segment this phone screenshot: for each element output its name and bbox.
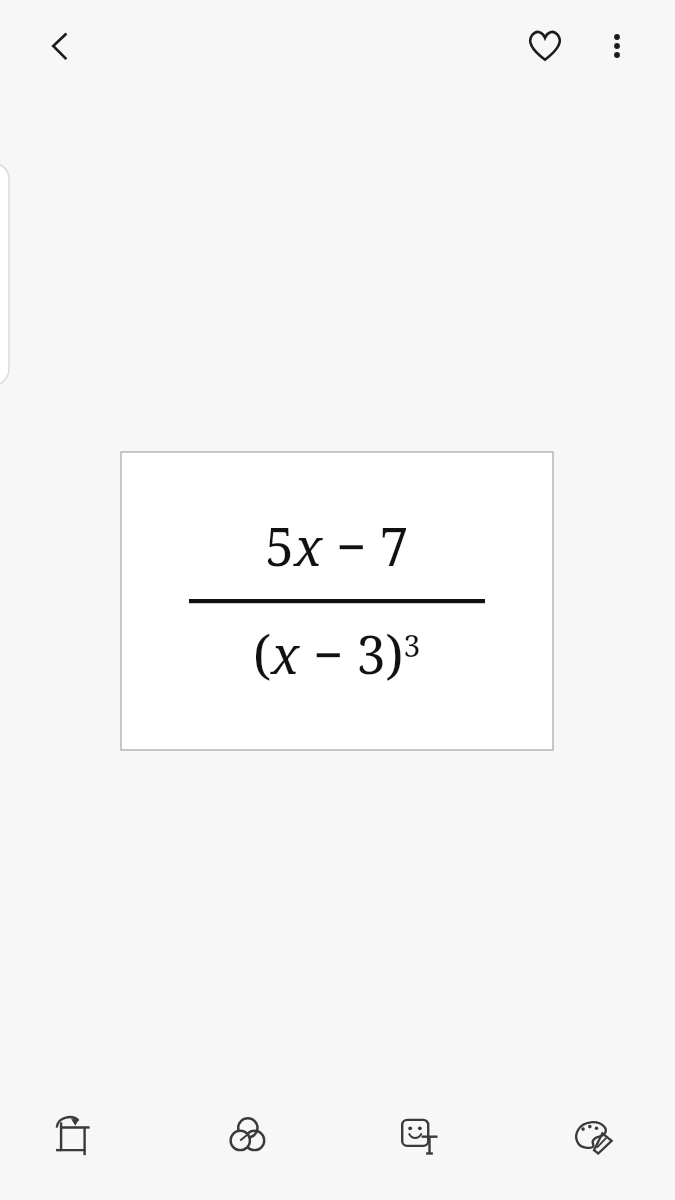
- button[interactable]: Back: [26, 12, 94, 80]
- button[interactable]: Filters: [213, 1101, 281, 1169]
- button[interactable]: Add sticker or text: [385, 1101, 453, 1169]
- button[interactable]: More options: [583, 12, 651, 80]
- button[interactable]: Draw: [560, 1101, 628, 1169]
- staticText: 5x − 7: [265, 510, 409, 581]
- button[interactable]: 5x − 7: [121, 452, 553, 750]
- staticText: (x − 3)3: [253, 618, 421, 689]
- button[interactable]: Favorite: [511, 12, 579, 80]
- button[interactable]: Crop and rotate: [38, 1101, 106, 1169]
